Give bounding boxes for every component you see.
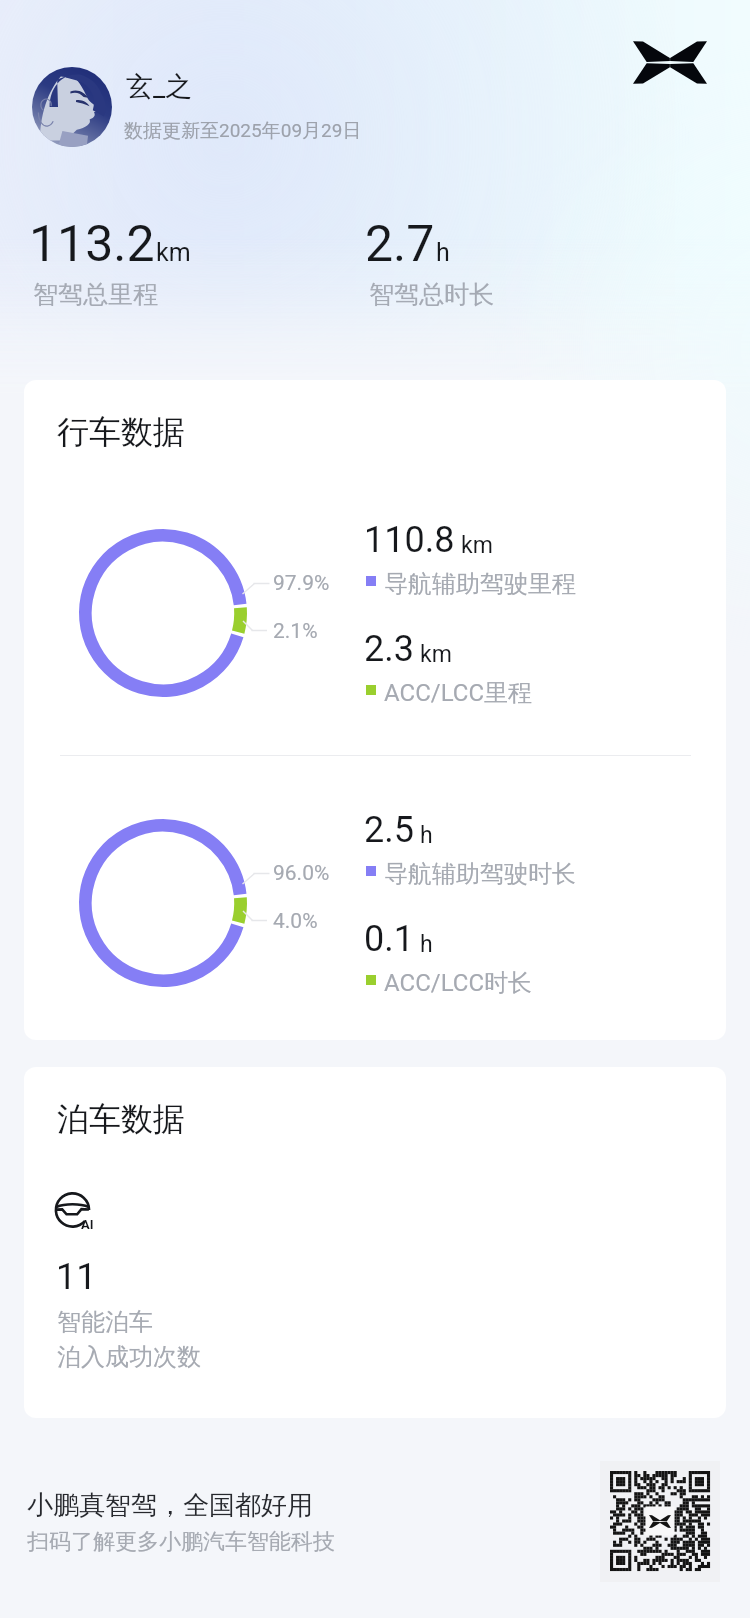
staticText: 智驾总时长 (369, 279, 494, 310)
button[interactable]: XPeng logo (633, 41, 707, 84)
staticText: km (156, 238, 191, 267)
staticText: 110.8 (364, 519, 455, 561)
staticText: ACC/LCC时长 (384, 968, 533, 998)
staticText: 11 (56, 1256, 97, 1298)
staticText: h (420, 931, 433, 958)
staticText: 数据更新至2025年09月29日 (124, 119, 362, 143)
staticText: 智能泊车 (57, 1307, 153, 1337)
staticText: 96.0% (273, 861, 330, 886)
staticText: 智驾总里程 (33, 279, 158, 310)
staticText: h (436, 238, 450, 267)
staticText: h (420, 822, 433, 849)
staticText: 97.9% (273, 571, 330, 596)
staticText: 玄_之 (126, 70, 193, 104)
staticText: 行车数据 (57, 412, 185, 452)
staticText: ACC/LCC里程 (384, 678, 533, 708)
button[interactable]: QR code (600, 1461, 720, 1582)
staticText: 113.2 (29, 215, 155, 274)
staticText: 泊车数据 (57, 1099, 185, 1139)
staticText: 导航辅助驾驶时长 (384, 859, 576, 889)
staticText: 2.3 (364, 628, 414, 670)
button[interactable]: Profile photo (24, 60, 404, 154)
other: Profile photo (32, 67, 112, 147)
staticText: 扫码了解更多小鹏汽车智能科技 (27, 1528, 335, 1556)
staticText: 2.7 (365, 215, 435, 274)
staticText: 泊入成功次数 (57, 1342, 201, 1372)
staticText: 4.0% (273, 909, 318, 934)
staticText: 小鹏真智驾，全国都好用 (27, 1489, 313, 1522)
staticText: 导航辅助驾驶里程 (384, 569, 576, 599)
staticText: 2.5 (364, 809, 414, 851)
staticText: km (420, 641, 452, 668)
staticText: 2.1% (273, 619, 318, 644)
staticText: 0.1 (364, 918, 414, 960)
staticText: AI (81, 1217, 94, 1232)
staticText: km (461, 532, 493, 559)
